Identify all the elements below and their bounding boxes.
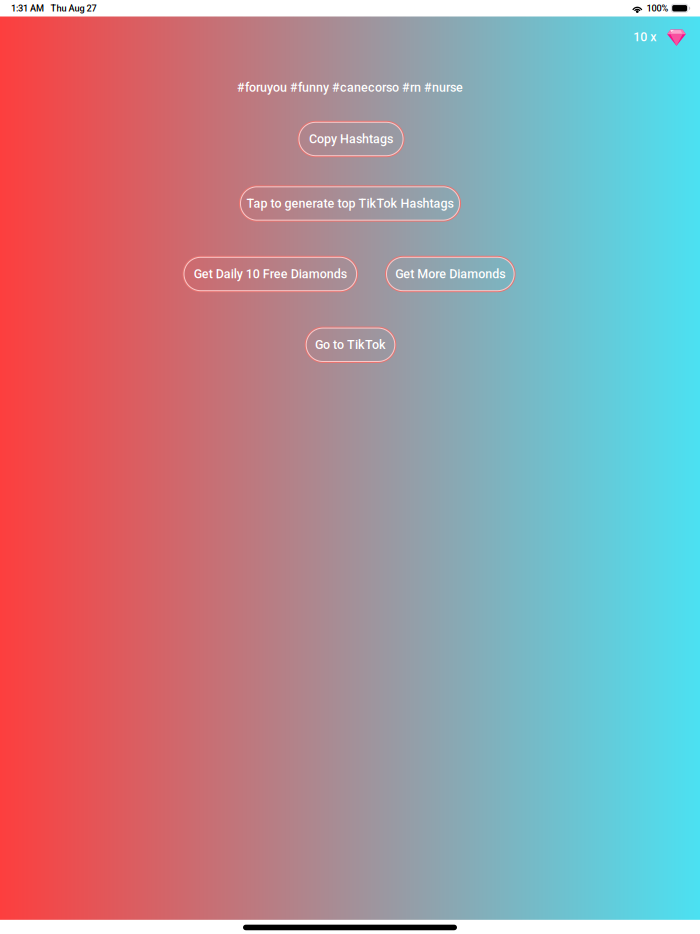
staticText: Tap to generate top TikTok Hashtags [246,196,453,211]
button[interactable]: Get Daily 10 Free Diamonds [183,256,358,292]
button[interactable]: Tap to generate top TikTok Hashtags [239,186,460,221]
staticText: #foruyou #funny #canecorso #rn #nurse [237,80,463,95]
staticText: Get More Diamonds [395,267,505,281]
button[interactable]: Go to TikTok [305,327,396,362]
staticText: Go to TikTok [315,337,386,352]
staticText: Thu Aug 27 [50,3,96,14]
staticText: Get Daily 10 Free Diamonds [194,267,347,281]
staticText: 1:31 AM [11,3,44,14]
staticText: Copy Hashtags [309,132,393,146]
button[interactable]: Get More Diamonds [386,256,515,292]
staticText: 10 x [633,30,656,44]
button[interactable]: Copy Hashtags [298,121,404,157]
staticText: 100% [646,3,668,14]
button[interactable]: Diamonds: 10 [633,28,686,46]
